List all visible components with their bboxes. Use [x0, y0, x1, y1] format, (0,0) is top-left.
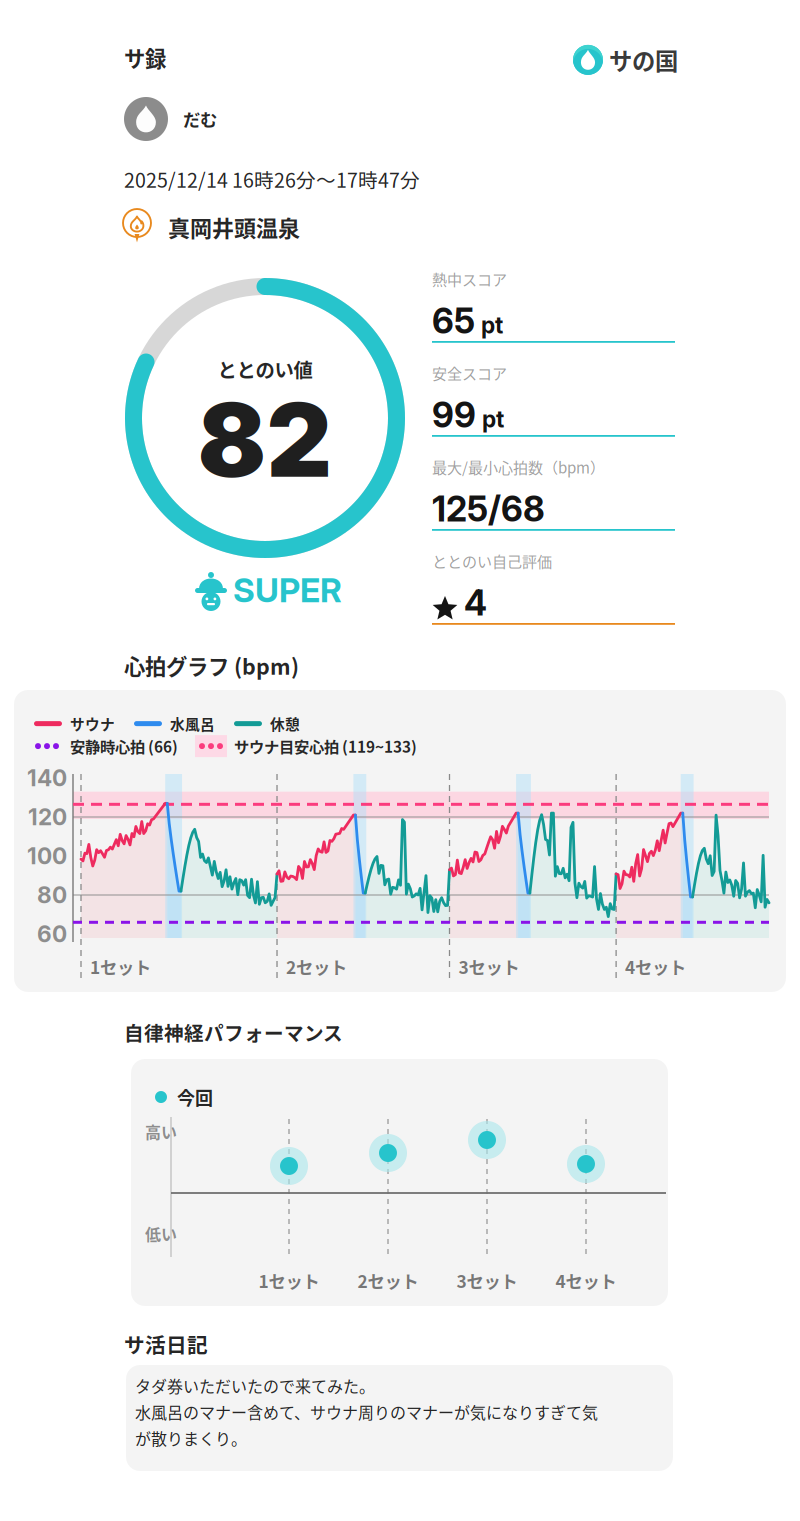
staticText: 熱中スコア [432, 268, 507, 290]
staticText: 4セット [625, 954, 686, 979]
staticText: 水風呂 [170, 713, 215, 734]
staticText: 真岡井頭温泉 [168, 211, 300, 243]
staticText: 2025/12/14 16時26分〜17時47分 [124, 165, 420, 193]
staticText: 4セット [555, 1268, 616, 1293]
staticText: 高い [145, 1120, 177, 1143]
staticText: 100 [27, 842, 67, 870]
staticText: サ活日記 [124, 1329, 208, 1359]
staticText: 140 [27, 764, 67, 792]
staticText: 水風呂のマナー含めて、サウナ周りのマナーが気になりすぎて気 [135, 1400, 598, 1423]
staticText: ととのい自己評価 [432, 550, 552, 572]
staticText: 安静時心拍 (66) [70, 735, 178, 757]
staticText: サ録 [124, 42, 166, 73]
staticText: 125/68 [432, 488, 545, 530]
staticText: 82 [197, 379, 332, 501]
staticText: 3セット [458, 954, 519, 979]
staticText: SUPER [233, 570, 342, 610]
staticText: 80 [37, 881, 67, 909]
staticText: 最大/最小心拍数（bpm） [432, 456, 605, 478]
staticText: 心拍グラフ (bpm) [124, 650, 299, 681]
staticText: pt [482, 405, 504, 433]
staticText: 低い [145, 1222, 177, 1245]
staticText: 自律神経パフォーマンス [124, 1018, 343, 1046]
staticText: 今回 [177, 1084, 213, 1110]
staticText: 60 [37, 920, 67, 948]
staticText: ととのい値 [217, 355, 312, 383]
staticText: だむ [183, 106, 217, 132]
staticText: 2セット [286, 954, 347, 979]
staticText: 3セット [456, 1268, 517, 1293]
staticText: が散りまくり。 [135, 1426, 247, 1449]
staticText: 120 [28, 803, 67, 831]
staticText: サの国 [609, 43, 678, 77]
staticText: 65 [432, 300, 475, 342]
staticText: 1セット [90, 954, 151, 979]
staticText: pt [481, 311, 503, 339]
staticText: タダ券いただいたので来てみた。 [135, 1374, 375, 1397]
staticText: 99 [432, 394, 476, 436]
staticText: 休憩 [270, 713, 300, 734]
staticText: 安全スコア [432, 362, 507, 384]
staticText: サウナ目安心拍 (119~133) [234, 735, 417, 757]
staticText: サウナ [70, 713, 115, 734]
staticText: 1セット [258, 1268, 319, 1293]
staticText: 2セット [357, 1268, 418, 1293]
staticText: 4 [464, 582, 487, 624]
button[interactable]: サの国 [573, 43, 678, 77]
